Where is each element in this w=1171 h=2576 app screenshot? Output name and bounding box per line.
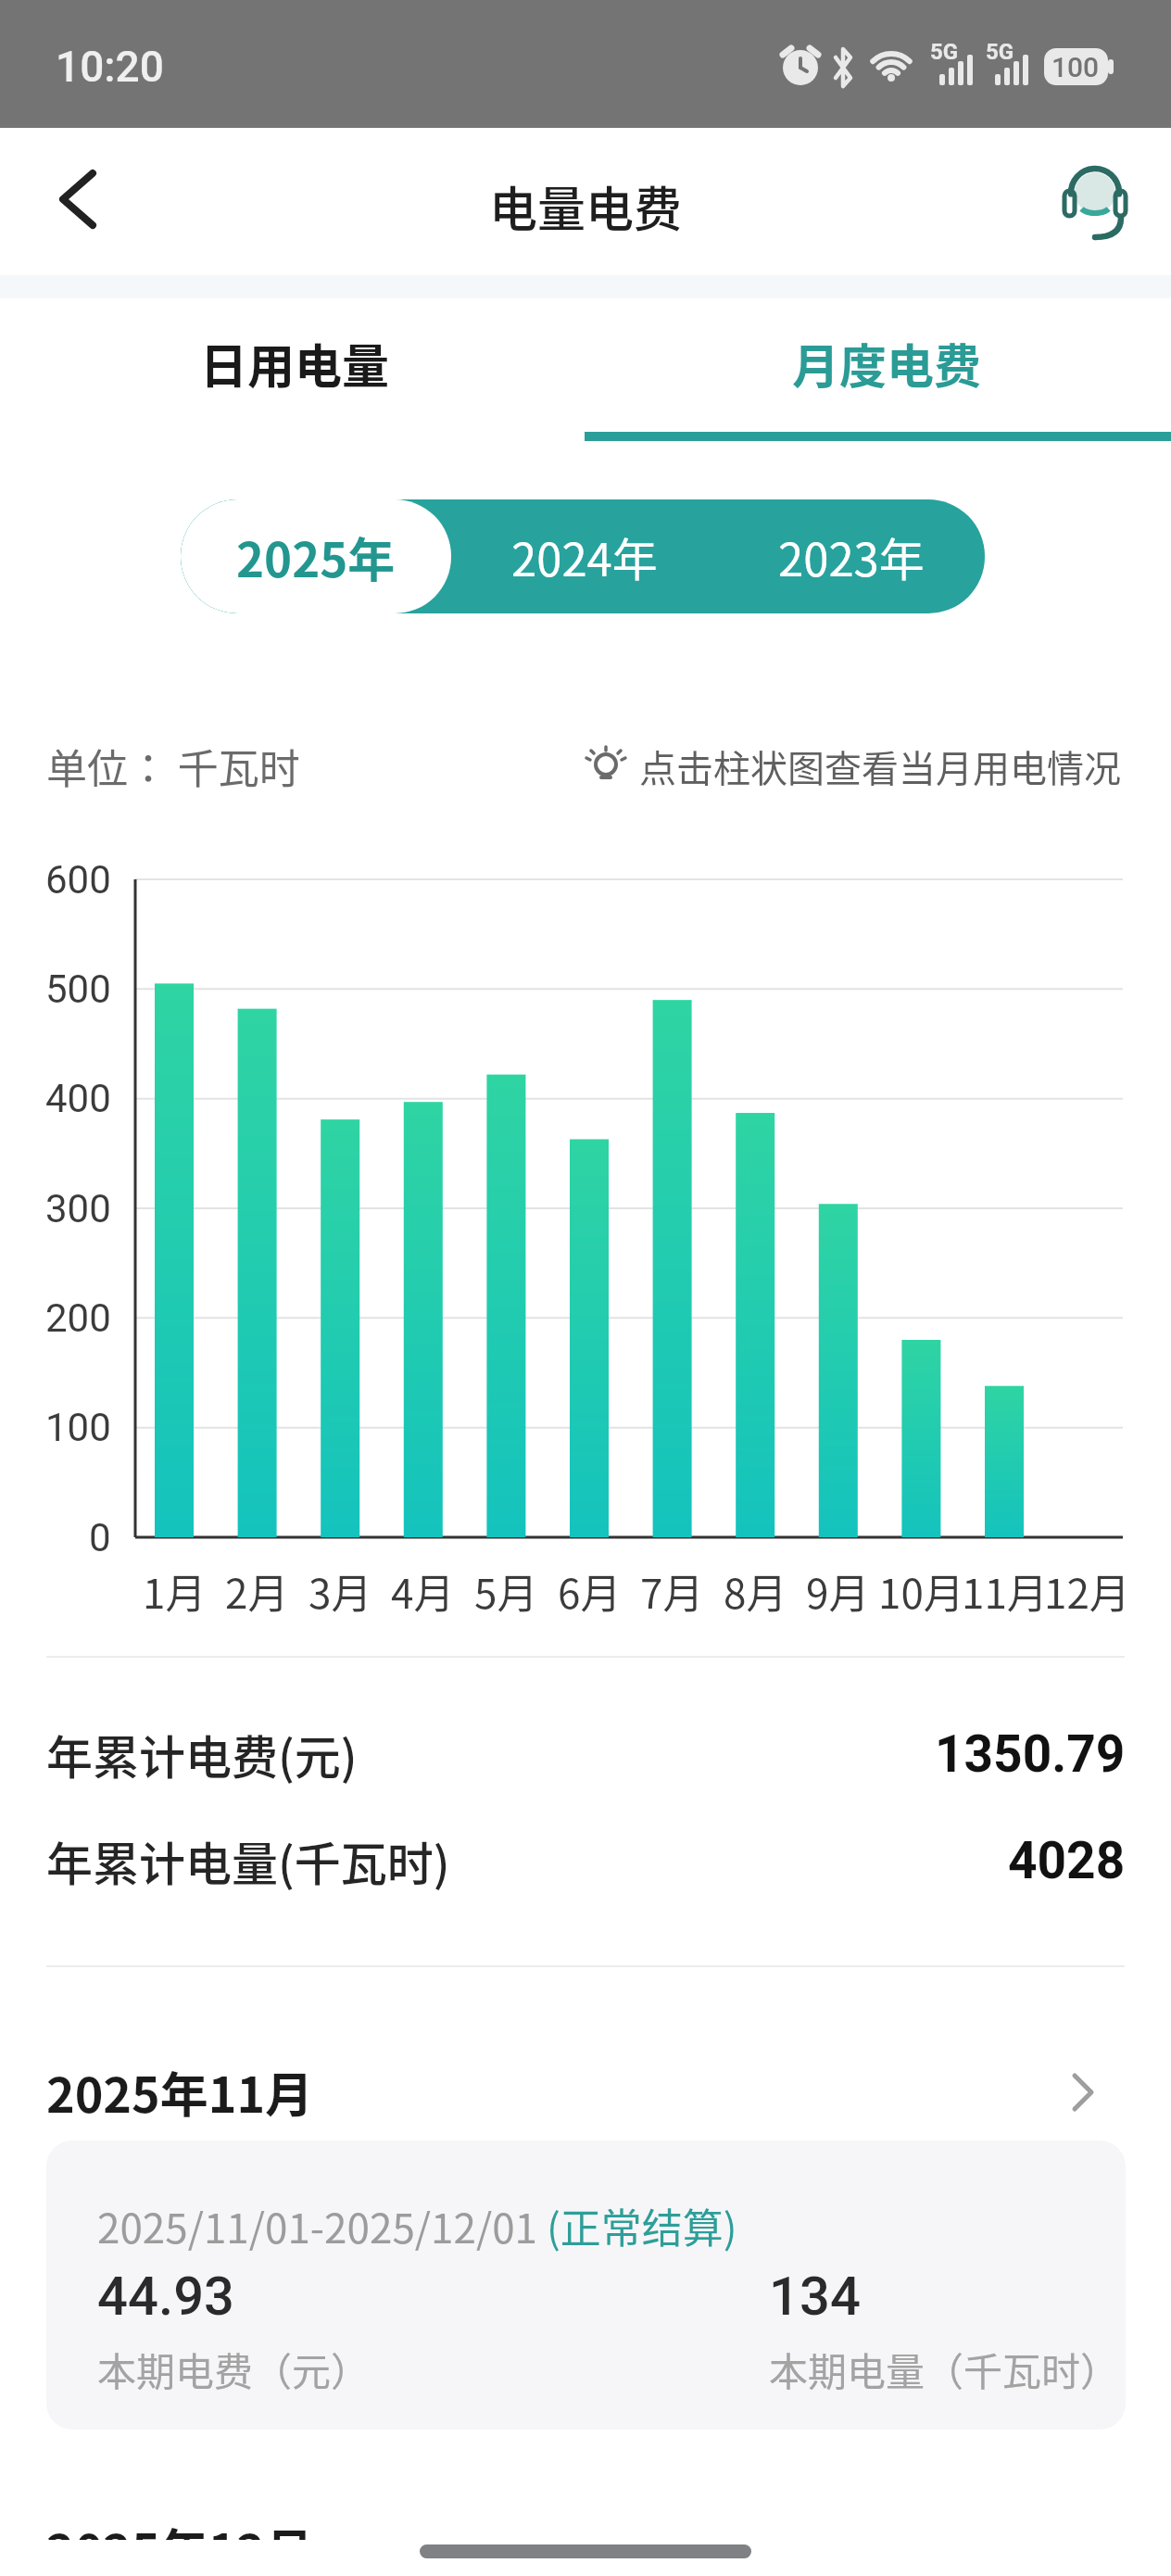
staticText: 电量电费 <box>489 171 683 241</box>
staticText: 44.93 <box>97 2265 235 2328</box>
staticText: 2025/11/01-2025/12/01 <box>97 2196 547 2255</box>
staticText: 年累计电量(千瓦时) <box>46 1827 450 1894</box>
staticText: 600 <box>45 857 111 903</box>
staticText: 100 <box>45 1405 111 1450</box>
staticText: 本期电量（千瓦时） <box>769 2341 1120 2397</box>
staticText: 6月 <box>558 1561 622 1621</box>
staticText: 点击柱状图查看当月用电情况 <box>639 739 1121 793</box>
staticText: 5G <box>986 39 1014 65</box>
staticText: 2025年11月 <box>46 2057 314 2127</box>
staticText: 11月 <box>962 1561 1048 1621</box>
staticText: 2025年 <box>236 523 396 591</box>
staticText: 单位： 千瓦时 <box>46 737 300 796</box>
staticText: 本期电费（元） <box>97 2341 371 2397</box>
staticText: 2023年 <box>778 524 925 589</box>
staticText: 400 <box>45 1076 111 1121</box>
staticText: (正常结算) <box>547 2196 737 2255</box>
staticText: 4月 <box>391 1561 455 1621</box>
staticText: 300 <box>45 1186 111 1231</box>
button[interactable] <box>37 158 120 241</box>
staticText: 1月 <box>143 1561 207 1621</box>
staticText: 2月 <box>225 1561 289 1621</box>
button[interactable]: 2023年 <box>718 499 985 613</box>
button[interactable]: 2024年 <box>451 499 718 613</box>
staticText: 0 <box>89 1515 111 1560</box>
staticText: 8月 <box>724 1561 787 1621</box>
staticText: 3月 <box>308 1561 372 1621</box>
staticText: 1350.79 <box>935 1724 1126 1784</box>
button[interactable]: 2025/11/01-2025/12/01 <box>46 2140 1126 2430</box>
staticText: 9月 <box>806 1561 870 1621</box>
staticText: 2025年12月 <box>46 2514 314 2576</box>
button[interactable]: 2025年11月 <box>46 2054 314 2128</box>
staticText: 12月 <box>1044 1561 1130 1621</box>
staticText: 月度电费 <box>792 329 982 398</box>
button[interactable]: 月度电费 <box>655 326 1118 400</box>
staticText: 134 <box>769 2265 861 2328</box>
button[interactable]: 2025年 <box>181 499 451 613</box>
staticText: 10月 <box>878 1561 964 1621</box>
staticText: 日用电量 <box>200 329 390 398</box>
staticText: 7月 <box>640 1561 704 1621</box>
staticText: 5月 <box>474 1561 538 1621</box>
staticText: 4028 <box>1008 1831 1126 1890</box>
staticText: 年累计电费(元) <box>46 1721 358 1787</box>
staticText: 10:20 <box>56 42 164 92</box>
staticText: 500 <box>45 966 111 1012</box>
staticText: 2024年 <box>511 524 658 589</box>
button[interactable]: 日用电量 <box>63 326 526 400</box>
staticText: 200 <box>45 1295 111 1341</box>
button[interactable] <box>1056 158 1138 239</box>
staticText: 100 <box>1051 51 1100 83</box>
staticText: 5G <box>930 39 959 65</box>
